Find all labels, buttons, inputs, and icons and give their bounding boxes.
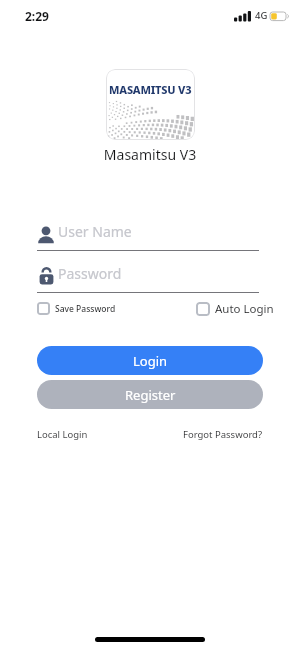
button[interactable]: Password <box>37 264 259 293</box>
staticText: Masamitsu V3 <box>0 145 300 164</box>
staticText: Login <box>133 352 168 370</box>
staticText: Password <box>58 264 122 283</box>
staticText: MASAMITSU V3 <box>109 82 192 97</box>
staticText: 4G <box>255 9 268 22</box>
staticText: 2:29 <box>25 8 49 24</box>
staticText: User Name <box>58 222 132 241</box>
button[interactable]: Save Password <box>37 302 116 315</box>
button[interactable]: User Name <box>37 222 259 251</box>
button[interactable]: Forgot Password? <box>183 428 263 441</box>
button[interactable]: Local Login <box>37 428 88 441</box>
staticText: Auto Login <box>215 301 274 317</box>
staticText: Register <box>125 386 176 404</box>
button[interactable]: Register <box>37 380 263 409</box>
staticText: Save Password <box>55 303 116 315</box>
button[interactable]: Login <box>37 346 263 375</box>
button[interactable]: Auto Login <box>196 301 274 317</box>
